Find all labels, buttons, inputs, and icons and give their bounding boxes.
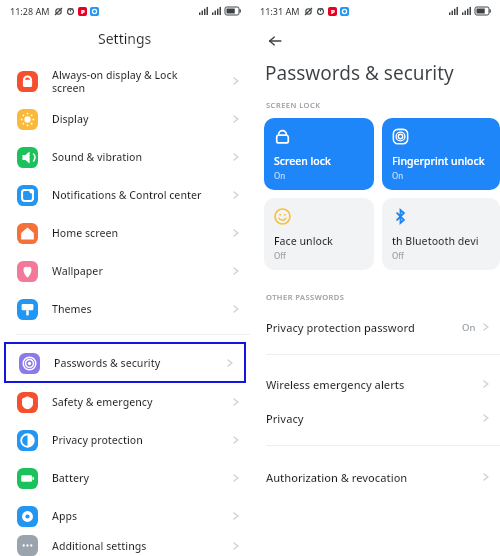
button[interactable]: Passwords & security [6,344,244,381]
staticText: Fingerprint unlock [392,154,485,168]
staticText: th Bluetooth devi [392,234,479,248]
staticText: Privacy protection password [266,320,462,335]
button[interactable]: Additional settings [0,535,250,556]
staticText: Home screen [52,226,232,240]
button[interactable]: Apps [0,497,250,535]
staticText: 11:31 AM [260,5,300,17]
staticText: On [462,321,476,334]
staticText: Safety & emergency [52,395,232,409]
staticText: P [331,8,335,16]
staticText: 11:28 AM [10,5,50,17]
staticText: OTHER PASSWORDS [266,292,345,302]
button[interactable]: Face unlock [264,198,374,270]
button[interactable]: Battery [0,459,250,497]
button[interactable]: Wallpaper [0,252,250,290]
staticText: Off [274,250,286,261]
staticText: Settings [98,29,152,48]
staticText: Always-on display & Lock screen [52,68,232,95]
staticText: Face unlock [274,234,333,248]
staticText: On [274,170,286,181]
staticText: Themes [52,302,232,316]
staticText: Wireless emergency alerts [266,377,482,392]
button[interactable]: Notifications & Control center [0,176,250,214]
staticText: Authorization & revocation [266,470,482,485]
button[interactable]: Fingerprint unlock [382,118,500,190]
button[interactable]: Back [262,28,288,54]
staticText: Off [392,250,404,261]
staticText: Privacy protection [52,433,232,447]
staticText: Additional settings [52,539,232,553]
button[interactable]: th Bluetooth devi [382,198,500,270]
staticText: Sound & vibration [52,150,232,164]
staticText: Passwords & security [54,356,226,370]
staticText: Wallpaper [52,264,232,278]
button[interactable]: Home screen [0,214,250,252]
button[interactable]: Privacy protection password [250,310,500,344]
button[interactable]: Privacy protection [0,421,250,459]
staticText: Apps [52,509,232,523]
staticText: Screen lock [274,154,331,168]
button[interactable]: Authorization & revocation [250,460,500,494]
staticText: Battery [52,471,232,485]
button[interactable]: Privacy [250,401,500,435]
staticText: P [81,8,85,16]
staticText: Notifications & Control center [52,188,232,202]
staticText: Display [52,112,232,126]
button[interactable]: Themes [0,290,250,328]
staticText: On [392,170,404,181]
button[interactable]: Sound & vibration [0,138,250,176]
staticText: Passwords & security [265,60,454,86]
button[interactable]: Safety & emergency [0,383,250,421]
button[interactable]: Always-on display & Lock screen [0,62,250,100]
staticText: Privacy [266,411,482,426]
button[interactable]: Display [0,100,250,138]
button[interactable]: Wireless emergency alerts [250,367,500,401]
staticText: SCREEN LOCK [266,100,321,110]
button[interactable]: Screen lock [264,118,374,190]
